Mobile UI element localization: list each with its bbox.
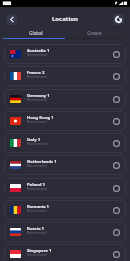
button[interactable]: Russia 1: [4, 222, 126, 242]
staticText: Recommend: [27, 141, 47, 145]
staticText: Global: [29, 30, 43, 36]
staticText: Recommend: [27, 52, 47, 56]
staticText: Location: [52, 15, 78, 23]
staticText: Recommend: [27, 208, 47, 212]
button[interactable]: France 2: [4, 66, 126, 86]
staticText: Germany 1: [27, 93, 50, 99]
staticText: Recommend: [27, 74, 47, 78]
button[interactable]: Germany 1: [4, 89, 126, 109]
button[interactable]: Poland 1: [4, 178, 126, 198]
staticText: Recommend: [27, 119, 47, 123]
button[interactable]: Australia 1: [4, 44, 126, 64]
staticText: Italy 1: [27, 137, 41, 143]
staticText: Recommend: [27, 186, 47, 190]
staticText: Romania 1: [27, 204, 49, 210]
staticText: Recommend: [27, 252, 47, 256]
staticText: Singapore 1: [27, 248, 52, 254]
staticText: Greece: [87, 30, 102, 36]
staticText: Recommend: [27, 163, 47, 167]
staticText: Poland 1: [27, 182, 45, 188]
button[interactable]: Romania 1: [4, 200, 126, 220]
staticText: Recommend: [27, 97, 47, 101]
button[interactable]: Italy 1: [4, 133, 126, 153]
button[interactable]: Hong Kong 1: [4, 111, 126, 131]
button[interactable]: Greece: [65, 27, 124, 38]
button[interactable]: Back: [6, 14, 17, 25]
staticText: Netherlands 1: [27, 159, 57, 165]
staticText: Hong Kong 1: [27, 115, 54, 121]
staticText: Russia 1: [27, 226, 44, 232]
button[interactable]: Refresh: [113, 14, 124, 25]
button[interactable]: Singapore 1: [4, 244, 126, 261]
staticText: France 2: [27, 70, 45, 76]
staticText: Australia 1: [27, 48, 50, 54]
staticText: Recommend: [27, 230, 47, 234]
button[interactable]: Global: [6, 27, 65, 38]
button[interactable]: Netherlands 1: [4, 155, 126, 175]
